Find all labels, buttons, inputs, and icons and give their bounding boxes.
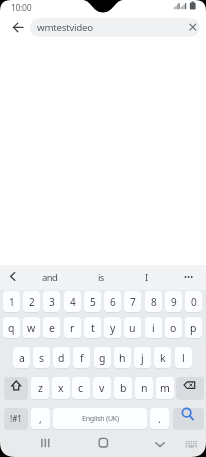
button[interactable]: f: [73, 347, 90, 368]
staticText: 1: [9, 295, 15, 309]
button[interactable]: r: [64, 317, 81, 338]
staticText: ,: [39, 412, 42, 426]
staticText: English (UK): [82, 414, 119, 424]
staticText: and: [42, 271, 58, 284]
button[interactable]: [181, 433, 202, 453]
button[interactable]: !#1: [4, 408, 28, 429]
staticText: x: [58, 381, 64, 395]
button[interactable]: e: [43, 317, 60, 338]
button[interactable]: I: [132, 267, 160, 288]
staticText: e: [49, 321, 55, 335]
button[interactable]: v: [93, 377, 111, 399]
staticText: I: [145, 271, 148, 284]
button[interactable]: [176, 377, 204, 399]
button[interactable]: 3: [43, 291, 60, 312]
button[interactable]: [93, 433, 114, 453]
staticText: 5: [90, 295, 96, 309]
button[interactable]: English (UK): [53, 408, 147, 429]
button[interactable]: 0: [185, 291, 202, 312]
button[interactable]: 6: [104, 291, 121, 312]
button[interactable]: y: [104, 317, 121, 338]
button[interactable]: 1: [3, 291, 20, 312]
button[interactable]: l: [175, 347, 192, 368]
button[interactable]: w: [23, 317, 40, 338]
staticText: l: [182, 351, 185, 365]
button[interactable]: is: [87, 267, 115, 288]
staticText: y: [110, 321, 116, 335]
staticText: a: [19, 351, 25, 365]
staticText: 0: [191, 295, 197, 309]
staticText: 2: [29, 295, 35, 309]
staticText: !#1: [10, 413, 22, 424]
staticText: j: [141, 351, 144, 365]
button[interactable]: d: [53, 347, 70, 368]
button[interactable]: ,: [31, 408, 50, 429]
button[interactable]: [3, 266, 23, 287]
staticText: p: [190, 321, 197, 335]
button[interactable]: [173, 408, 204, 429]
staticText: k: [160, 351, 166, 365]
button[interactable]: t: [84, 317, 101, 338]
button[interactable]: [178, 266, 198, 287]
button[interactable]: 9: [165, 291, 182, 312]
staticText: u: [129, 321, 136, 335]
button[interactable]: p: [185, 317, 202, 338]
button[interactable]: and: [36, 267, 64, 288]
button[interactable]: 2: [23, 291, 40, 312]
button[interactable]: 4: [64, 291, 81, 312]
staticText: m: [160, 381, 170, 395]
button[interactable]: s: [33, 347, 50, 368]
staticText: 10:00: [11, 2, 32, 14]
button[interactable]: i: [145, 317, 162, 338]
staticText: f: [80, 351, 84, 365]
staticText: is: [98, 271, 104, 284]
button[interactable]: g: [94, 347, 111, 368]
staticText: s: [39, 351, 45, 365]
staticText: t: [91, 321, 95, 335]
staticText: 8: [151, 295, 157, 309]
button[interactable]: n: [135, 377, 153, 399]
button[interactable]: q: [3, 317, 20, 338]
staticText: d: [58, 351, 65, 365]
staticText: i: [152, 321, 155, 335]
staticText: q: [8, 321, 15, 335]
staticText: n: [141, 381, 148, 395]
button[interactable]: h: [114, 347, 131, 368]
button[interactable]: o: [165, 317, 182, 338]
staticText: c: [78, 381, 84, 395]
staticText: 6: [110, 295, 116, 309]
button[interactable]: [4, 377, 28, 399]
staticText: 7: [130, 295, 136, 309]
button[interactable]: 7: [124, 291, 141, 312]
button[interactable]: [149, 433, 170, 453]
button[interactable]: b: [114, 377, 132, 399]
staticText: 4: [70, 295, 76, 309]
staticText: g: [99, 351, 106, 365]
button[interactable]: [7, 17, 29, 38]
staticText: 9: [171, 295, 177, 309]
button[interactable]: m: [156, 377, 174, 399]
staticText: 3: [49, 295, 55, 309]
staticText: v: [99, 381, 105, 395]
staticText: w: [27, 321, 36, 335]
staticText: h: [119, 351, 126, 365]
button[interactable]: u: [124, 317, 141, 338]
staticText: o: [170, 321, 177, 335]
button[interactable]: wmtestvideo: [30, 18, 200, 37]
button[interactable]: z: [31, 377, 49, 399]
button[interactable]: 8: [145, 291, 162, 312]
button[interactable]: a: [13, 347, 30, 368]
button[interactable]: [35, 433, 56, 453]
button[interactable]: x: [52, 377, 70, 399]
button[interactable]: c: [72, 377, 90, 399]
button[interactable]: j: [134, 347, 151, 368]
button[interactable]: k: [154, 347, 171, 368]
staticText: z: [38, 381, 43, 395]
staticText: b: [120, 381, 127, 395]
button[interactable]: 5: [84, 291, 101, 312]
staticText: r: [70, 321, 75, 335]
staticText: .: [158, 412, 161, 426]
button[interactable]: .: [150, 408, 169, 429]
staticText: wmtestvideo: [37, 21, 93, 34]
